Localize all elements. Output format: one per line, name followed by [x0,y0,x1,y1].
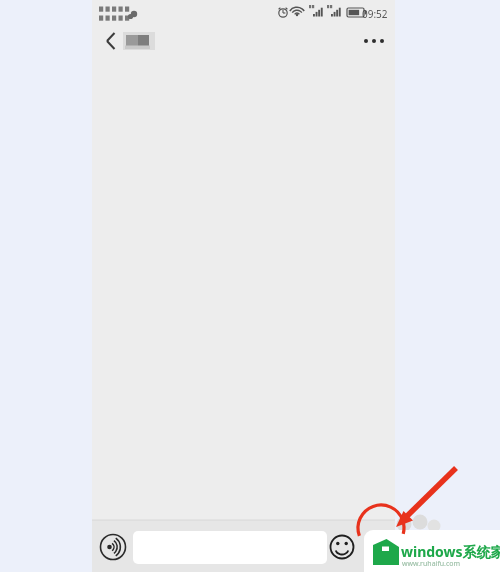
button[interactable]: More functions [362,533,390,561]
staticText: windows系统家园 [401,542,500,561]
button[interactable]: Back [98,24,132,58]
staticText: www.ruhaifu.com [402,559,461,569]
button[interactable]: Emoji [329,533,357,561]
staticText: 09:52 [362,7,388,21]
button[interactable] [124,26,214,56]
button[interactable]: More options [356,26,390,58]
button[interactable]: Voice message [99,532,129,562]
